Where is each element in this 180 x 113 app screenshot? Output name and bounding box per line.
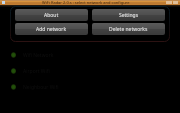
button[interactable]: Neighbour Wifi bbox=[0, 79, 180, 95]
button[interactable]: Delete networks bbox=[92, 23, 165, 35]
button[interactable]: Settings bbox=[92, 9, 165, 21]
button[interactable]: Wifi Network bbox=[0, 47, 180, 63]
staticText: Delete networks bbox=[109, 26, 148, 33]
button[interactable]: About bbox=[15, 9, 88, 21]
staticText: About bbox=[44, 12, 59, 19]
staticText: WiFi Radar 2.0.s : select network and co… bbox=[42, 0, 130, 5]
button[interactable]: Add network bbox=[15, 23, 88, 35]
button[interactable]: Airport Wifi bbox=[0, 63, 180, 79]
staticText: Add network bbox=[36, 26, 67, 33]
staticText: Settings bbox=[119, 12, 139, 19]
